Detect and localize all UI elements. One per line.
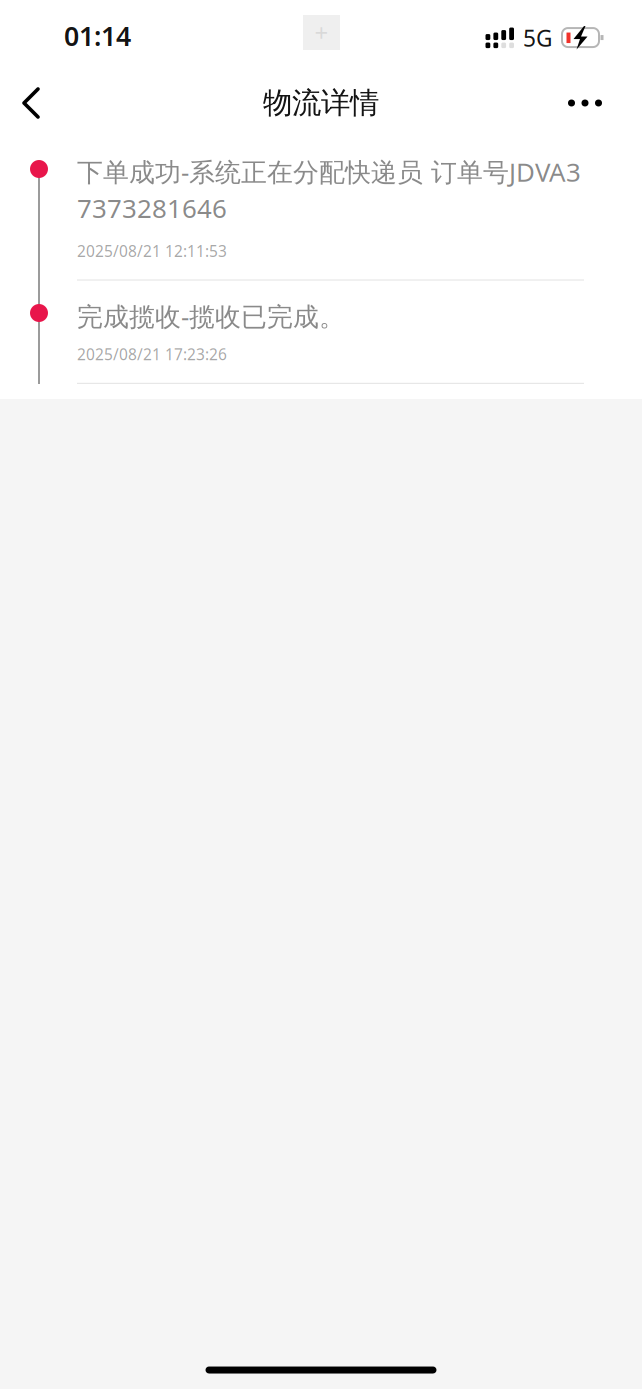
staticText: 物流详情 — [263, 85, 379, 121]
button[interactable]: More options — [540, 73, 630, 133]
staticText: 下单成功-系统正在分配快递员 订单号JDVA3 — [77, 154, 581, 189]
button[interactable]: 完成揽收-揽收已完成。 — [77, 280, 584, 384]
staticText: + — [314, 17, 328, 48]
button[interactable]: Back — [12, 73, 58, 133]
staticText: 01:14 — [64, 18, 131, 53]
staticText: 2025/08/21 17:23:26 — [77, 344, 227, 365]
staticText: 7373281646 — [77, 190, 227, 225]
staticText: 5G — [523, 23, 553, 53]
staticText: 完成揽收-揽收已完成。 — [77, 298, 345, 334]
button[interactable]: 下单成功-系统正在分配快递员 订单号JDVA3 — [77, 154, 584, 280]
staticText: 2025/08/21 12:11:53 — [77, 240, 227, 262]
